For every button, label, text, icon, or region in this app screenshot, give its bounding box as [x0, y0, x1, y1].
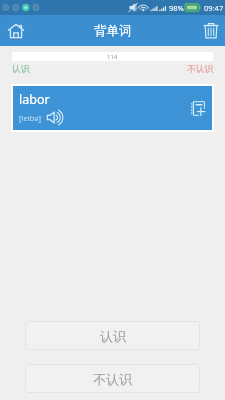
button[interactable]: Home — [0, 15, 31, 46]
button[interactable]: 不认识 — [25, 364, 200, 393]
button[interactable]: labor — [13, 86, 212, 130]
staticText: 不认识 — [93, 371, 132, 387]
staticText: [leibə] — [19, 113, 41, 123]
button[interactable]: Delete — [197, 15, 225, 46]
staticText: 认识 — [100, 328, 126, 344]
staticText: 认识 — [12, 64, 30, 75]
staticText: 09:47 — [204, 3, 224, 13]
staticText: 114 — [107, 53, 118, 61]
staticText: 不认识 — [187, 64, 214, 75]
staticText: labor — [19, 91, 50, 108]
button[interactable]: Play pronunciation — [46, 111, 64, 124]
button[interactable]: Add to notebook — [188, 98, 208, 118]
button[interactable]: 认识 — [25, 321, 200, 350]
staticText: 98% — [169, 3, 184, 13]
staticText: 背单词 — [94, 23, 132, 39]
